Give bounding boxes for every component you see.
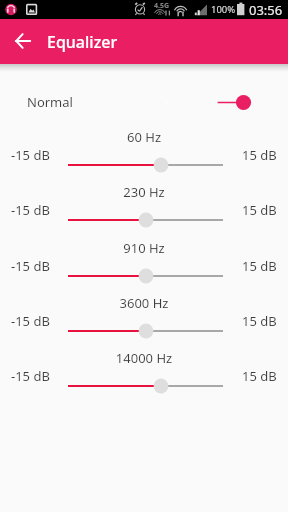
staticText: 15 dB xyxy=(242,312,277,330)
staticText: -15 dB xyxy=(11,367,50,385)
staticText: 60 Hz xyxy=(0,128,288,146)
staticText: Normal xyxy=(27,93,73,111)
staticText: 14000 Hz xyxy=(0,349,288,367)
button[interactable] xyxy=(58,321,233,341)
staticText: 15 dB xyxy=(242,201,277,219)
staticText: 03:56 xyxy=(249,1,283,19)
staticText: 15 dB xyxy=(242,257,277,275)
staticText: 230 Hz xyxy=(0,183,288,201)
button[interactable]: Back xyxy=(5,23,41,59)
staticText: 100% xyxy=(211,3,236,16)
staticText: -15 dB xyxy=(11,257,50,275)
staticText: -15 dB xyxy=(11,146,50,164)
staticText: 15 dB xyxy=(242,146,277,164)
staticText: -15 dB xyxy=(11,201,50,219)
button[interactable] xyxy=(58,376,233,396)
button[interactable] xyxy=(58,155,233,175)
staticText: 910 Hz xyxy=(0,239,288,257)
staticText: 15 dB xyxy=(242,367,277,385)
button[interactable] xyxy=(58,266,233,286)
staticText: -15 dB xyxy=(11,312,50,330)
staticText: 3600 Hz xyxy=(0,294,288,312)
button[interactable]: Normal xyxy=(0,78,288,127)
staticText: Equalizer xyxy=(47,31,118,53)
staticText: 4.5G xyxy=(154,1,170,11)
button[interactable] xyxy=(58,210,233,230)
